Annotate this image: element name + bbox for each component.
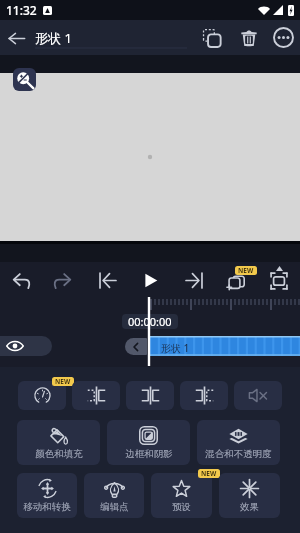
staticText: 编辑点 (100, 501, 129, 513)
staticText: 预设 (172, 501, 191, 513)
button[interactable]: Fit to screen (270, 272, 288, 290)
button[interactable]: Trim end (180, 381, 228, 410)
staticText: 11:32 (6, 2, 37, 18)
staticText: 边框和阴影 (125, 448, 173, 460)
button[interactable]: Delete (235, 24, 263, 52)
staticText: NEW (238, 266, 254, 275)
staticText: 形状 1 (35, 29, 72, 47)
button[interactable]: Duplicate layer (198, 24, 226, 52)
button[interactable]: 形状 1 (149, 336, 300, 356)
button[interactable]: 效果 (219, 473, 280, 518)
button[interactable]: 形状 1 (35, 29, 187, 51)
button[interactable]: 00:00:00 (122, 314, 178, 329)
staticText: NEW (55, 377, 71, 386)
button[interactable]: Toggle visibility (0, 336, 52, 356)
button[interactable]: Split clip (126, 381, 174, 410)
button[interactable]: Jump to start (91, 264, 123, 296)
button[interactable]: Redo (46, 264, 78, 296)
staticText: 颜色和填充 (35, 448, 83, 460)
staticText: 00:00:00 (128, 314, 172, 329)
button[interactable]: Trim start (72, 381, 120, 410)
button[interactable]: Mute (234, 381, 282, 410)
button[interactable]: Collapse layer (125, 338, 147, 355)
button[interactable]: 边框和阴影 (107, 420, 190, 465)
staticText: 移动和转换 (23, 501, 71, 513)
button[interactable]: 预设 (151, 473, 212, 518)
button[interactable]: 颜色和填充 (17, 420, 100, 465)
button[interactable]: Add layer (228, 272, 246, 290)
button[interactable]: 移动和转换 (17, 473, 77, 518)
button[interactable]: Undo (5, 264, 37, 296)
button[interactable]: Jump to end (178, 264, 210, 296)
button[interactable]: 混合和不透明度 (197, 420, 280, 465)
button[interactable]: 编辑点 (84, 473, 144, 518)
staticText: 效果 (240, 501, 259, 513)
button[interactable]: Back (2, 24, 30, 52)
staticText: 形状 1 (161, 341, 190, 355)
button[interactable]: Reset zoom (13, 68, 36, 91)
staticText: 混合和不透明度 (205, 448, 272, 460)
button[interactable]: More options (269, 23, 297, 51)
staticText: NEW (201, 469, 217, 478)
button[interactable]: Speed (18, 381, 66, 410)
button[interactable]: Play (134, 264, 166, 296)
